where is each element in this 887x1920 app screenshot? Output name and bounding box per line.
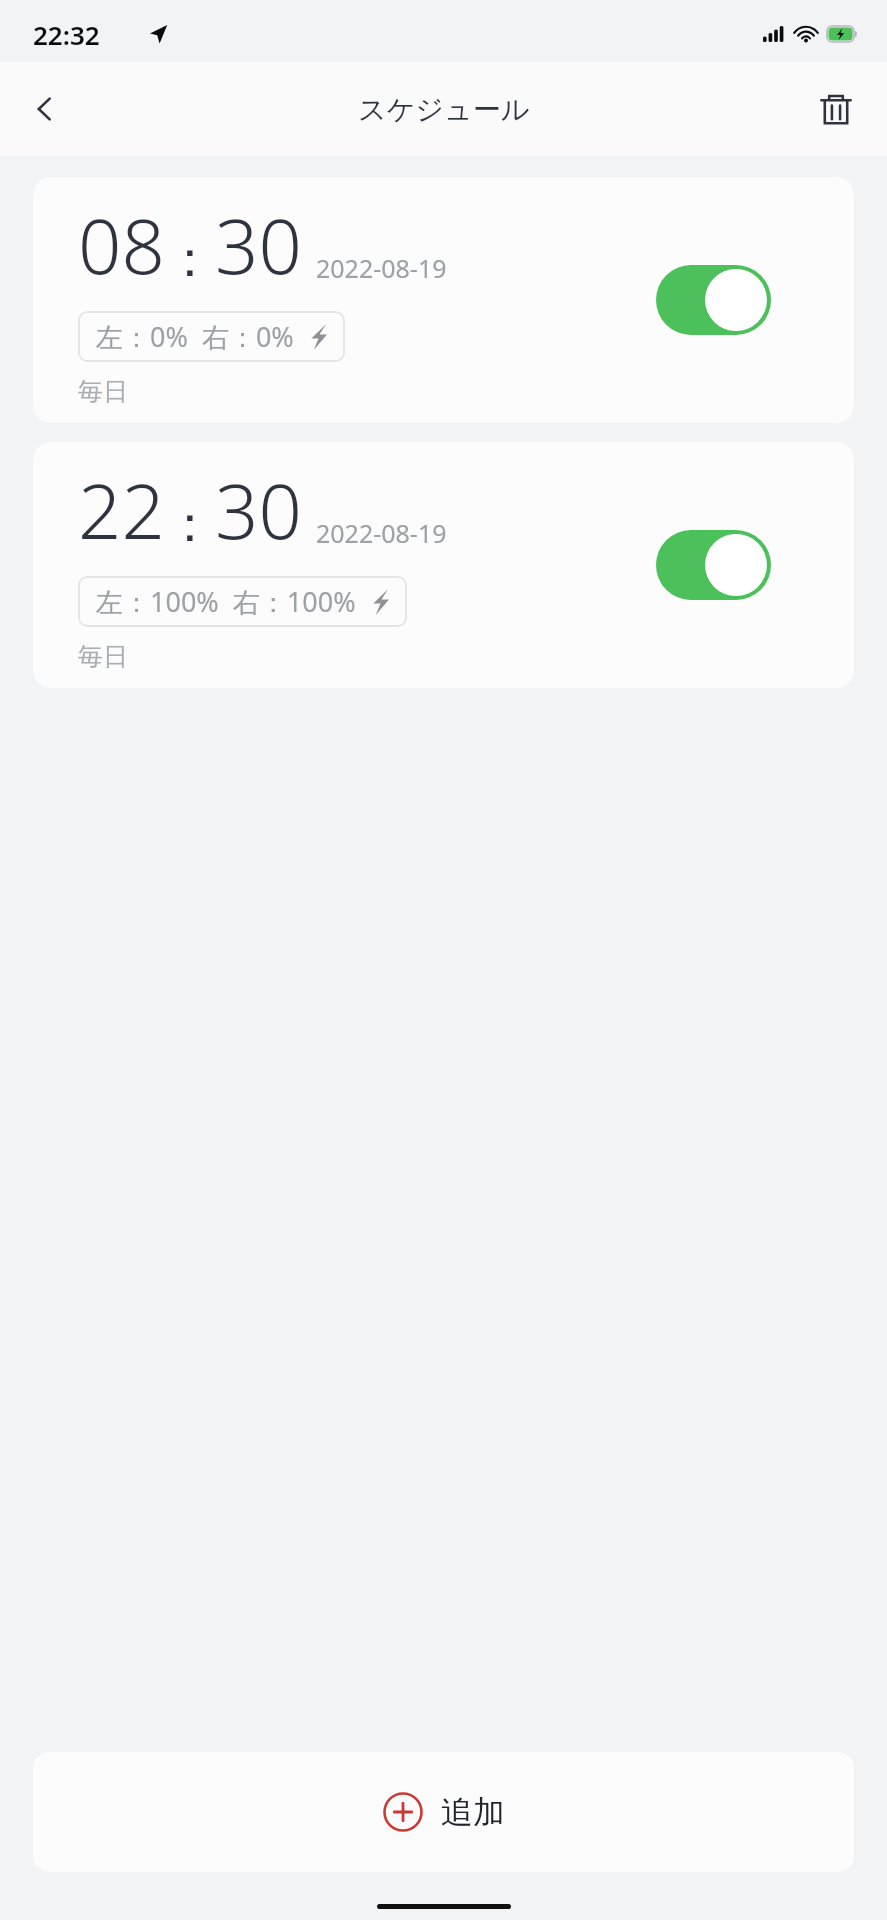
staticText: 2022-08-19 — [316, 516, 447, 550]
button[interactable]: Toggle alarm — [656, 530, 771, 600]
button[interactable]: Toggle alarm — [656, 265, 771, 335]
button[interactable]: Back — [14, 78, 76, 140]
staticText: 30 — [215, 193, 302, 297]
staticText: ： — [165, 228, 215, 291]
button[interactable]: 22 — [33, 442, 854, 688]
staticText: 22:32 — [33, 17, 100, 52]
staticText: 08 — [78, 193, 165, 297]
button[interactable]: 08 — [33, 177, 854, 423]
staticText: 毎日 — [78, 376, 128, 407]
staticText: 22 — [78, 458, 165, 562]
button[interactable]: 追加 — [33, 1752, 854, 1872]
staticText: スケジュール — [358, 92, 530, 127]
staticText: 毎日 — [78, 641, 128, 672]
staticText: 左：100% 右：100% — [96, 583, 356, 620]
staticText: 追加 — [441, 1792, 505, 1832]
button[interactable]: Delete — [805, 78, 867, 140]
staticText: 30 — [215, 458, 302, 562]
staticText: ： — [165, 493, 215, 556]
staticText: 左：0% 右：0% — [96, 318, 294, 355]
staticText: 2022-08-19 — [316, 251, 447, 285]
